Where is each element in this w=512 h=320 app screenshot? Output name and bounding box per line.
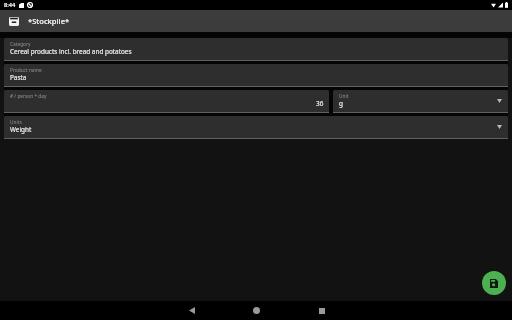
staticText: g [339, 99, 343, 108]
staticText: Product name [10, 67, 42, 74]
staticText: 8:44 [4, 1, 16, 9]
button[interactable]: Unit [333, 90, 508, 113]
staticText: Weight [10, 125, 32, 134]
staticText: Units [10, 119, 22, 126]
button[interactable]: Category [4, 38, 508, 61]
staticText: 36 [316, 99, 324, 108]
staticText: Cereal products incl. bread and potatoes [10, 47, 132, 56]
button[interactable]: Home [224, 301, 289, 320]
button[interactable]: # / person * day [4, 90, 329, 113]
button[interactable]: Save [482, 271, 506, 295]
staticText: # / person * day [10, 93, 47, 100]
staticText: Category [10, 41, 31, 48]
button[interactable]: Back [159, 301, 224, 320]
button[interactable]: Units [4, 116, 508, 139]
staticText: *Stockpile* [28, 16, 70, 26]
button[interactable]: Recents [289, 301, 354, 320]
button[interactable]: Stockpile [6, 13, 22, 29]
button[interactable]: Product name [4, 64, 508, 87]
staticText: Pasta [10, 73, 27, 82]
staticText: Unit [339, 93, 349, 100]
